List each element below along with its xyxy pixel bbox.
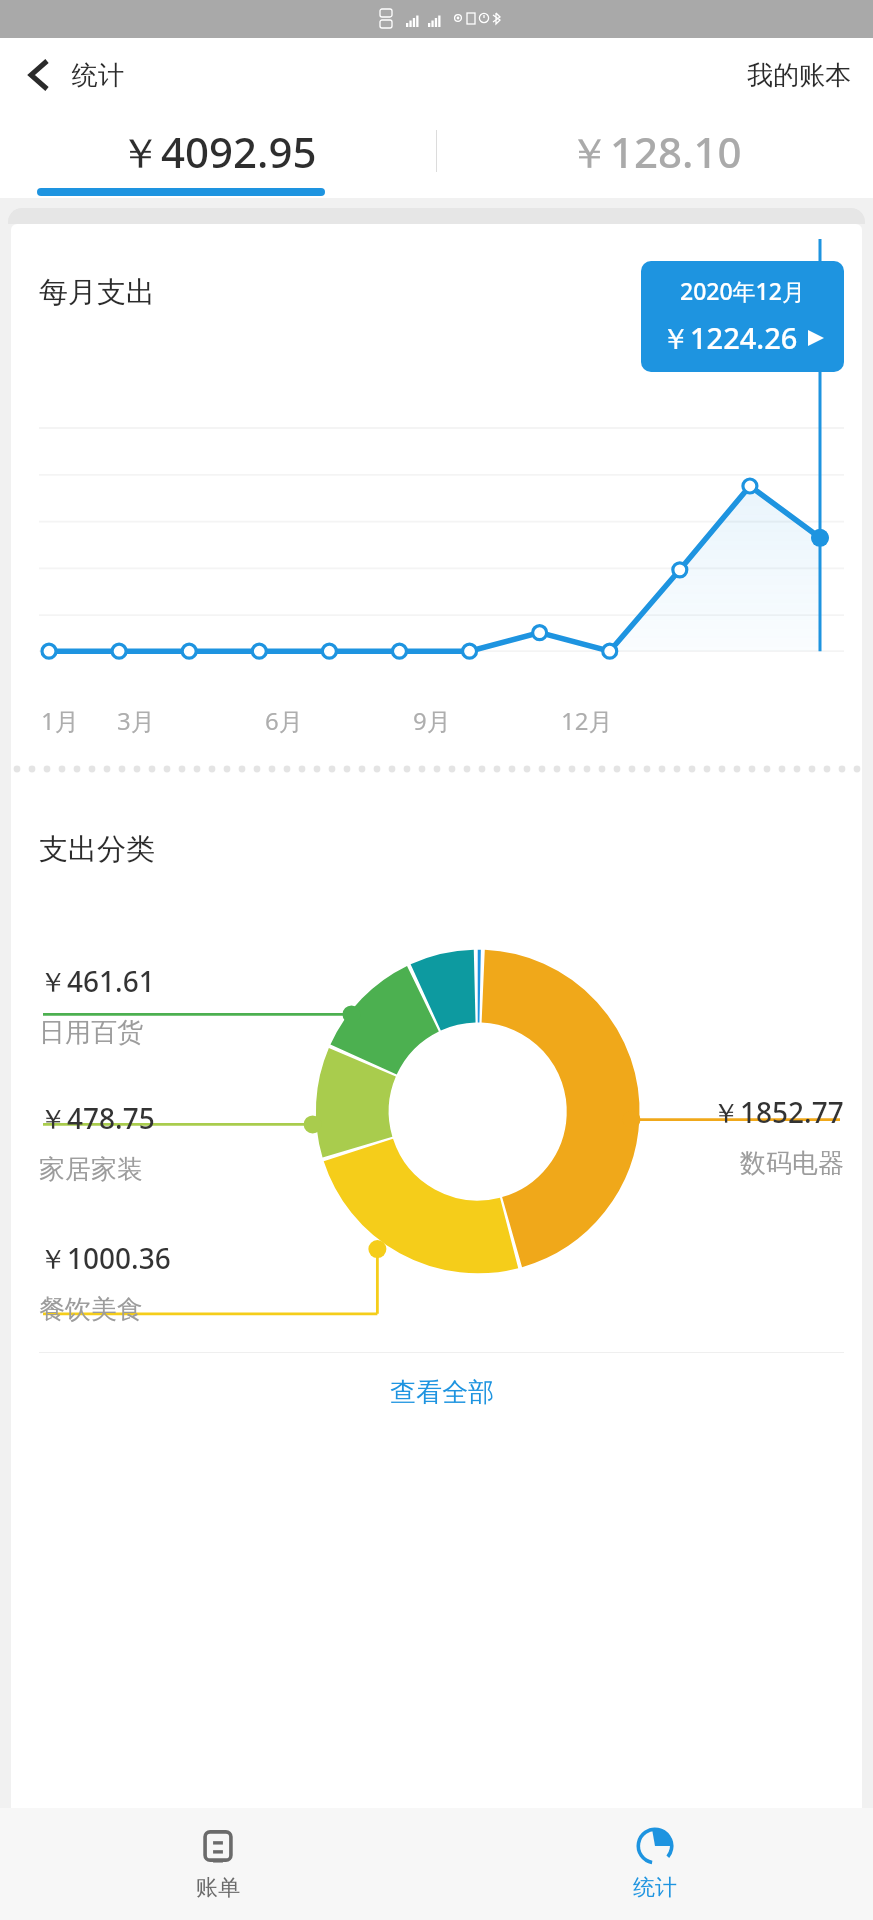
staticText: ￥1224.26 — [661, 318, 798, 358]
staticText: 1月 — [41, 704, 79, 737]
staticText: 家居家装 — [39, 1153, 143, 1186]
staticText: 9月 — [413, 704, 451, 737]
staticText: 6月 — [265, 704, 303, 737]
button[interactable]: 账单 — [0, 1808, 436, 1920]
staticText: 查看全部 — [390, 1376, 494, 1409]
staticText: 数码电器 — [740, 1147, 844, 1180]
staticText: ￥1852.77 — [712, 1093, 844, 1131]
staticText: 支出分类 — [39, 831, 155, 868]
staticText: 账单 — [196, 1874, 240, 1902]
staticText: 日用百货 — [39, 1016, 143, 1049]
staticText: ￥461.61 — [39, 962, 155, 1000]
button[interactable]: ￥128.10 — [437, 112, 873, 190]
staticText: ￥478.75 — [39, 1099, 155, 1137]
staticText: 餐饮美食 — [39, 1293, 143, 1326]
button[interactable]: 2020年12月 — [661, 275, 824, 358]
staticText: ￥4092.95 — [119, 123, 317, 180]
staticText: 3月 — [117, 704, 155, 737]
staticText: 12月 — [561, 704, 613, 737]
button[interactable]: Back — [16, 52, 62, 98]
staticText: 统计 — [72, 59, 124, 92]
staticText: 2020年12月 — [680, 275, 805, 306]
button[interactable]: 查看全部 — [39, 1353, 844, 1431]
staticText: 每月支出 — [39, 274, 155, 311]
staticText: 统计 — [633, 1874, 677, 1902]
staticText: ￥128.10 — [568, 123, 742, 180]
button[interactable]: 我的账本 — [741, 53, 857, 98]
staticText: ￥1000.36 — [39, 1239, 171, 1277]
staticText: 我的账本 — [747, 59, 851, 92]
button[interactable]: ￥4092.95 — [0, 112, 436, 190]
button[interactable]: 统计 — [436, 1808, 873, 1920]
